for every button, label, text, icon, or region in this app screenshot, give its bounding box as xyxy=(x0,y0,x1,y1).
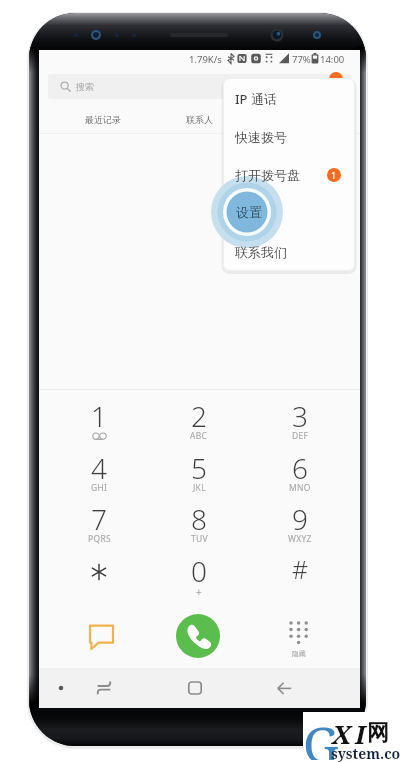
staticText: 打开拨号盘 xyxy=(235,167,300,183)
button[interactable]: 打开拨号盘 xyxy=(223,157,355,193)
staticText: DEF xyxy=(292,430,309,442)
button[interactable]: 4 xyxy=(49,449,149,499)
staticText: ABC xyxy=(190,430,208,442)
staticText: WXYZ xyxy=(288,533,312,545)
button[interactable]: Home xyxy=(180,673,210,703)
button[interactable]: 9 xyxy=(250,500,350,550)
button[interactable]: 6 xyxy=(250,449,350,499)
staticText: 快速拨号 xyxy=(235,129,287,145)
staticText: 4 xyxy=(91,449,107,487)
button[interactable]: 8 xyxy=(149,500,249,550)
button[interactable]: Send message xyxy=(71,608,131,666)
button[interactable]: 5 xyxy=(149,449,249,499)
button[interactable]: 1 xyxy=(49,397,149,447)
staticText: 隐藏 xyxy=(292,649,306,658)
staticText: G xyxy=(303,710,339,760)
staticText: 1.79K/s xyxy=(189,53,222,66)
button[interactable]: Call xyxy=(176,614,220,658)
staticText: 14:00 xyxy=(320,53,345,66)
button[interactable]: Hide keypad xyxy=(269,606,329,664)
staticText: 联系人 xyxy=(186,114,213,125)
staticText: 7 xyxy=(91,500,107,538)
button[interactable]: 搜索 xyxy=(48,74,351,99)
staticText: PQRS xyxy=(88,533,111,545)
staticText: 1 xyxy=(331,169,337,181)
staticText: X xyxy=(332,716,352,751)
button[interactable]: Recent apps xyxy=(89,673,119,703)
staticText: 6 xyxy=(292,449,308,487)
staticText: IP 通话 xyxy=(235,90,277,108)
staticText: 网 xyxy=(367,719,389,747)
button[interactable]: 2 xyxy=(149,397,249,447)
staticText: GHI xyxy=(91,482,108,494)
staticText: 联系我们 xyxy=(235,244,287,260)
button[interactable]: 联系我们 xyxy=(223,234,355,270)
staticText: MNO xyxy=(289,482,311,494)
staticText: system.com xyxy=(331,744,400,762)
button[interactable]: Back xyxy=(269,673,299,703)
staticText: TUV xyxy=(191,533,208,545)
button[interactable]: # xyxy=(250,552,350,602)
staticText: # xyxy=(292,552,309,586)
button[interactable]: 3 xyxy=(250,397,350,447)
staticText: 5 xyxy=(191,449,207,487)
staticText: 2 xyxy=(191,397,207,435)
staticText: 最近记录 xyxy=(85,114,121,125)
staticText: 8 xyxy=(191,500,207,538)
staticText: 1 xyxy=(91,397,107,435)
staticText: 3 xyxy=(292,397,308,435)
staticText: 9 xyxy=(292,500,308,538)
staticText: 77% xyxy=(292,53,311,66)
staticText: JKL xyxy=(193,482,206,494)
button[interactable]: 0 xyxy=(149,552,249,602)
button[interactable]: Keyboard toggle xyxy=(42,668,79,708)
button[interactable]: 7 xyxy=(49,500,149,550)
button[interactable]: 联系人 xyxy=(169,106,229,132)
staticText: + xyxy=(196,585,202,599)
button[interactable]: 快速拨号 xyxy=(223,119,355,155)
staticText: I xyxy=(355,716,366,751)
staticText: 设置 xyxy=(236,204,262,220)
button[interactable]: 设置 xyxy=(223,194,355,230)
button[interactable]: 最近记录 xyxy=(73,106,133,132)
button[interactable] xyxy=(49,552,149,602)
staticText: 0 xyxy=(191,552,207,590)
button[interactable]: IP 通话 xyxy=(223,81,355,117)
staticText: 搜索 xyxy=(76,81,94,92)
